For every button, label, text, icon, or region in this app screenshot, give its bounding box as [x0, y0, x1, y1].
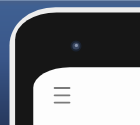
button[interactable]: Open menu [0, 0, 140, 125]
